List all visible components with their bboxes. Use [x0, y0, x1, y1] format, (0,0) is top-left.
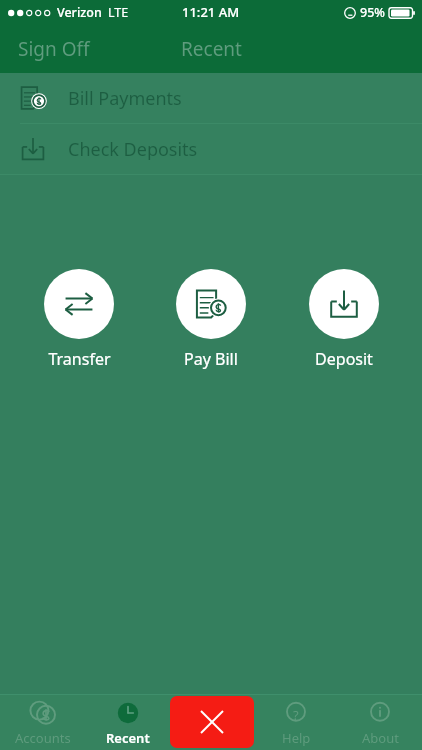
staticText: About: [362, 729, 399, 747]
staticText: Help: [282, 729, 311, 747]
staticText: 95%: [360, 4, 385, 21]
button[interactable]: Recent: [85, 694, 170, 750]
button[interactable]: Close: [170, 696, 254, 748]
staticText: ?: [293, 706, 299, 724]
staticText: 11:21 AM: [182, 3, 240, 21]
staticText: Recent: [181, 36, 242, 62]
staticText: Transfer: [48, 348, 111, 370]
button[interactable]: Bill Payments: [0, 73, 422, 123]
button[interactable]: Check Deposits: [0, 124, 422, 174]
staticText: Pay Bill: [184, 348, 238, 370]
staticText: Verizon: [57, 4, 102, 21]
staticText: Deposit: [315, 348, 373, 370]
button[interactable]: Accounts: [0, 694, 85, 750]
staticText: LTE: [108, 4, 129, 21]
button[interactable]: About: [338, 694, 422, 750]
button[interactable]: Transfer: [25, 175, 133, 370]
staticText: Check Deposits: [68, 137, 198, 162]
staticText: Bill Payments: [68, 86, 182, 111]
staticText: Recent: [106, 729, 150, 747]
button[interactable]: Sign Off: [0, 30, 104, 68]
staticText: Accounts: [15, 729, 71, 747]
button[interactable]: Deposit: [290, 175, 398, 370]
button[interactable]: Pay Bill: [157, 175, 265, 370]
staticText: Sign Off: [18, 36, 90, 62]
button[interactable]: Help: [254, 694, 338, 750]
